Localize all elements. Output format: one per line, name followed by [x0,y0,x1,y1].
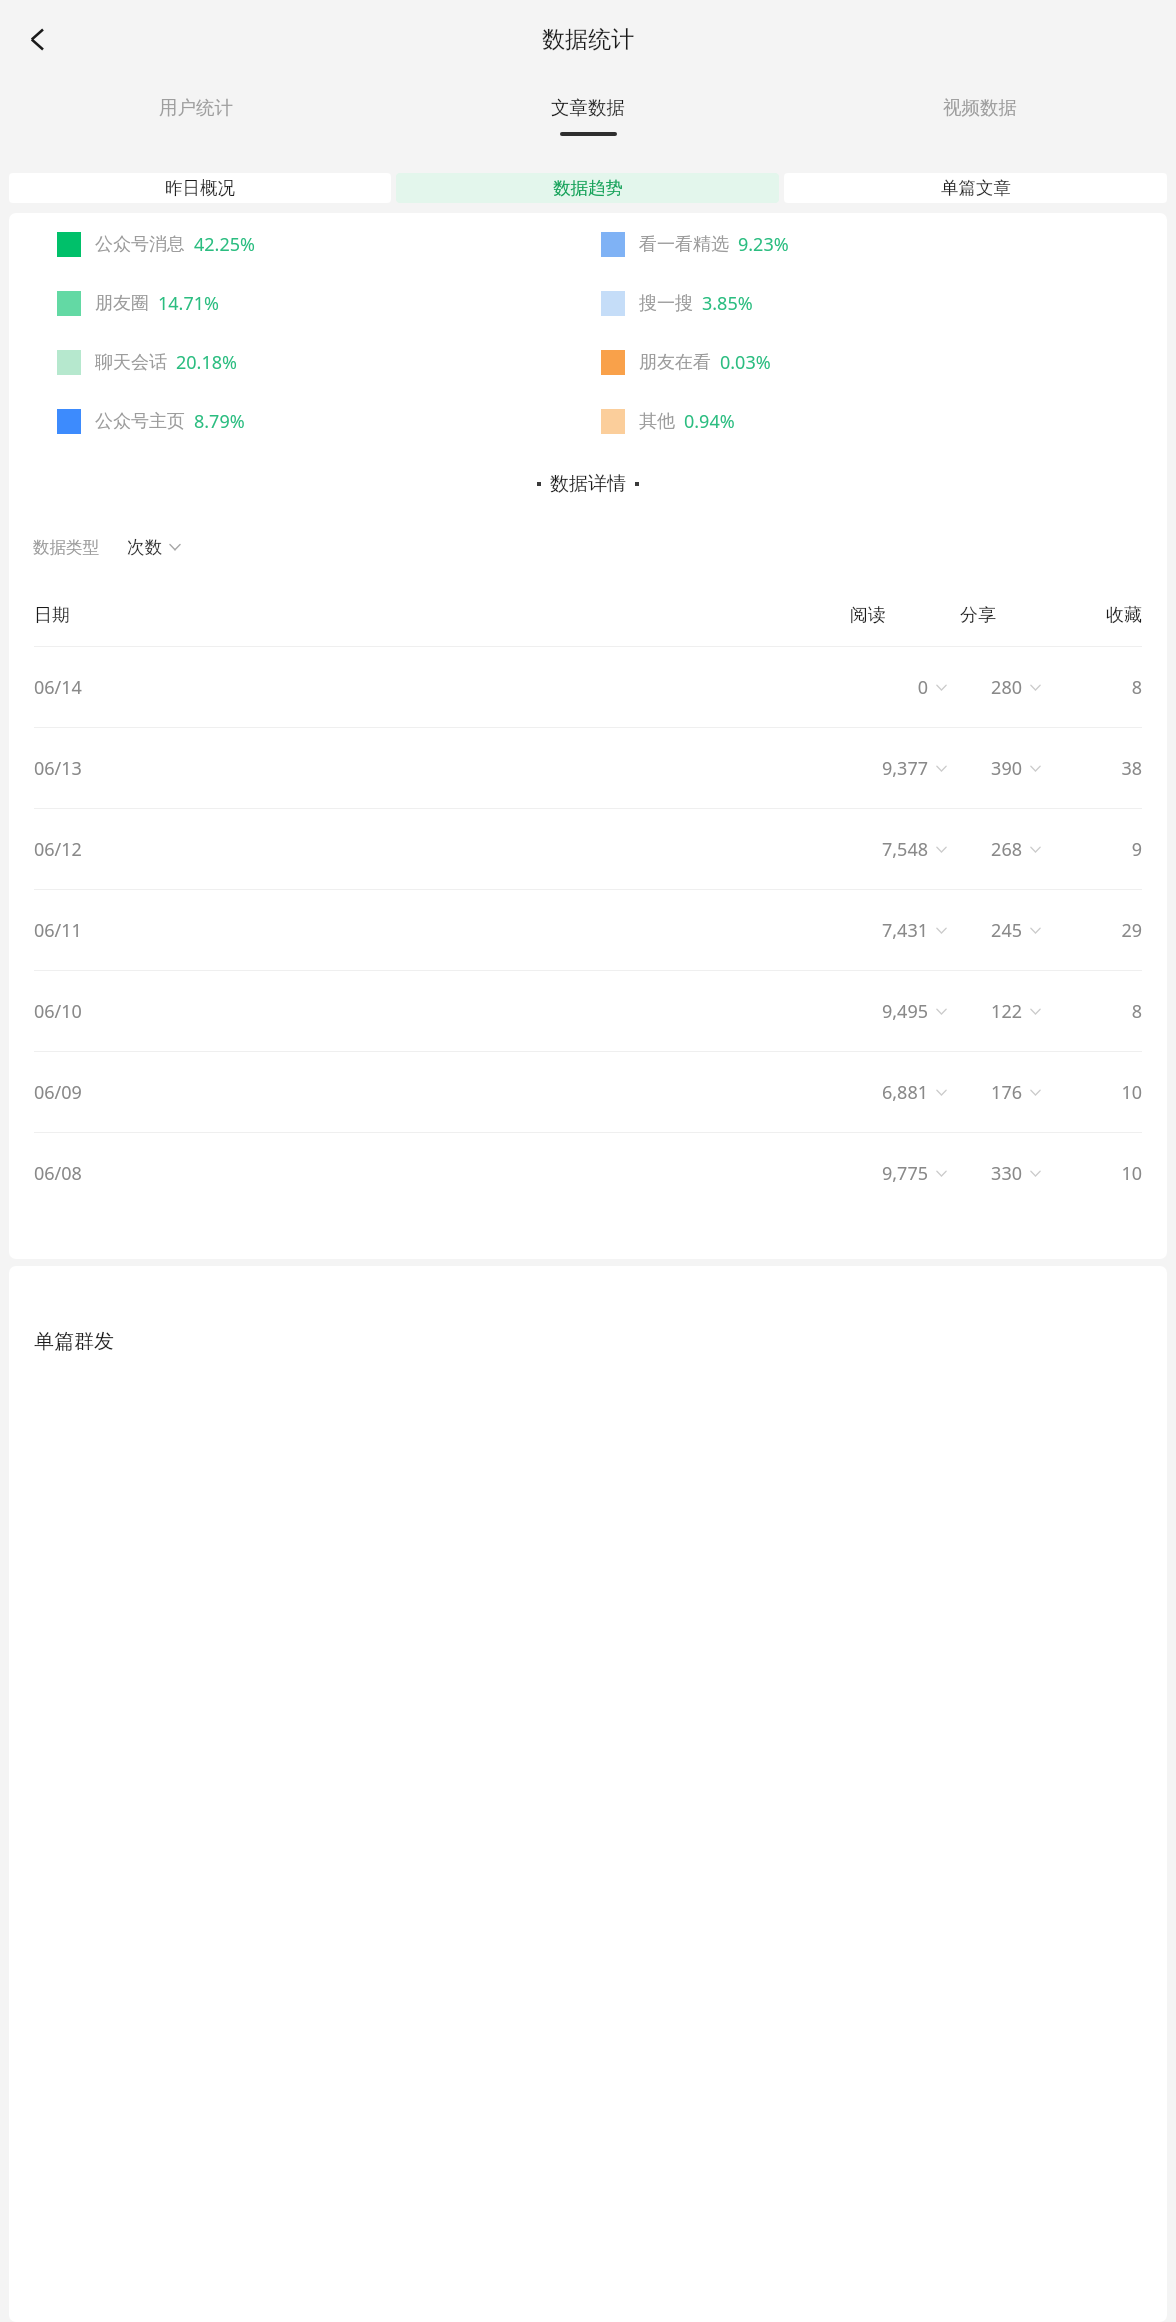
staticText: 176 [960,1080,1022,1105]
staticText: 9,377 [850,756,928,781]
staticText: 9.23% [738,232,789,257]
button[interactable]: 06/11 [9,890,1167,970]
staticText: 20.18% [176,350,237,375]
staticText: 公众号主页 [95,410,185,433]
staticText: 8 [1070,675,1142,700]
button[interactable]: 06/12 [9,809,1167,889]
staticText: 06/09 [34,1080,82,1105]
staticText: 3.85% [702,291,753,316]
staticText: 06/11 [34,918,82,943]
button[interactable]: 单篇文章 [784,173,1167,203]
staticText: 29 [1070,918,1142,943]
staticText: 42.25% [194,232,255,257]
staticText: 公众号消息 [95,233,185,256]
staticText: 文章数据 [551,96,625,119]
staticText: 06/10 [34,999,82,1024]
staticText: 268 [960,837,1022,862]
staticText: 其他 [639,410,675,433]
staticText: 数据趋势 [553,177,623,199]
staticText: 分享 [960,604,1070,627]
button[interactable]: 06/08 [9,1133,1167,1213]
staticText: 390 [960,756,1022,781]
staticText: 昨日概况 [165,177,235,199]
staticText: 数据统计 [542,25,634,54]
staticText: 06/13 [34,756,82,781]
staticText: 次数 [127,536,162,558]
staticText: 38 [1070,756,1142,781]
staticText: 330 [960,1161,1022,1186]
button[interactable]: 用户统计 [0,78,392,165]
staticText: 8 [1070,999,1142,1024]
staticText: 用户统计 [159,96,233,119]
staticText: 日期 [34,604,70,627]
staticText: 单篇文章 [941,177,1011,199]
staticText: 视频数据 [943,96,1017,119]
staticText: 搜一搜 [639,292,693,315]
staticText: 朋友圈 [95,292,149,315]
staticText: 收藏 [1070,604,1142,627]
button[interactable]: 次数 [127,536,181,558]
button[interactable]: 数据趋势 [396,173,779,203]
staticText: 7,548 [850,837,928,862]
staticText: 0 [850,675,928,700]
staticText: 06/14 [34,675,82,700]
staticText: 06/12 [34,837,82,862]
staticText: 06/08 [34,1161,82,1186]
staticText: 6,881 [850,1080,928,1105]
button[interactable]: Back [8,10,66,68]
button[interactable]: 06/14 [9,647,1167,727]
staticText: 8.79% [194,409,245,434]
staticText: 数据类型 [33,537,99,558]
staticText: 10 [1070,1080,1142,1105]
staticText: 9,775 [850,1161,928,1186]
staticText: 7,431 [850,918,928,943]
staticText: 280 [960,675,1022,700]
staticText: 看一看精选 [639,233,729,256]
staticText: 聊天会话 [95,351,167,374]
staticText: 0.94% [684,409,735,434]
button[interactable]: 昨日概况 [9,173,391,203]
staticText: 阅读 [850,604,960,627]
button[interactable]: 06/13 [9,728,1167,808]
button[interactable]: 06/09 [9,1052,1167,1132]
staticText: 朋友在看 [639,351,711,374]
staticText: 245 [960,918,1022,943]
staticText: 9,495 [850,999,928,1024]
staticText: 10 [1070,1161,1142,1186]
staticText: 数据详情 [550,472,626,496]
staticText: 0.03% [720,350,771,375]
button[interactable]: 视频数据 [784,78,1176,165]
staticText: 单篇群发 [34,1329,114,1354]
button[interactable]: 文章数据 [392,78,784,165]
staticText: 14.71% [158,291,219,316]
staticText: 122 [960,999,1022,1024]
staticText: 9 [1070,837,1142,862]
button[interactable]: 06/10 [9,971,1167,1051]
